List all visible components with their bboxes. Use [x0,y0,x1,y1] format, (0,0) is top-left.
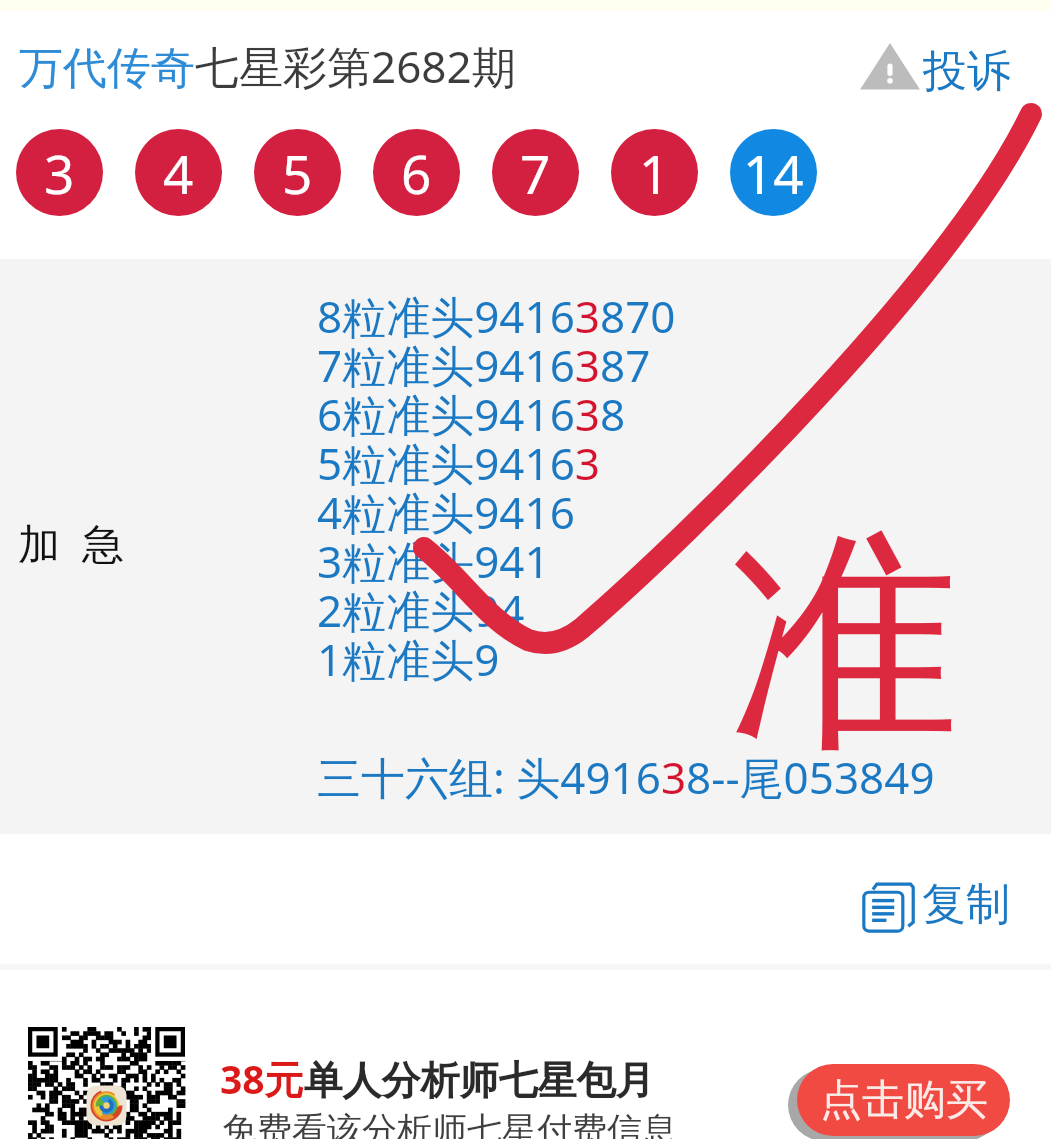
staticText: 免费看该分析师七星付费信息 [222,1108,677,1139]
other: 复制 [862,879,914,933]
button[interactable]: 14 [730,129,817,216]
staticText: 38元单人分析师七星包月 [220,1052,655,1105]
staticText: 1 [639,137,670,209]
staticText: 5 [282,137,313,209]
staticText: 6 [401,137,432,209]
staticText: 8粒准头94163870 7粒准头9416387 6粒准头941638 5粒准头… [317,296,676,688]
staticText: 三十六组: 头491638--尾053849 [317,747,935,807]
staticText: 4 [163,137,194,209]
staticText: 点击购买 [820,1074,988,1127]
staticText: 3 [44,137,75,209]
staticText: 14 [743,137,804,209]
button[interactable]: 7 [492,129,579,216]
button[interactable]: 3 [16,129,103,216]
button[interactable]: 投诉 [856,36,1008,98]
staticText: 准 [727,499,960,793]
button[interactable]: 4 [135,129,222,216]
button[interactable] [0,970,1051,1139]
button[interactable]: 6 [373,129,460,216]
other: 投诉 [863,46,917,90]
staticText: 复制 [922,877,1010,932]
staticText: 万代传奇七星彩第2682期 [19,36,516,96]
staticText: 7 [520,137,551,209]
staticText: 投诉 [923,44,1011,99]
staticText: 加 急 [18,514,124,571]
button[interactable]: 复制 [856,870,1014,938]
button[interactable]: 1 [611,129,698,216]
button[interactable]: 5 [254,129,341,216]
button[interactable]: 点击购买 [797,1064,1010,1136]
